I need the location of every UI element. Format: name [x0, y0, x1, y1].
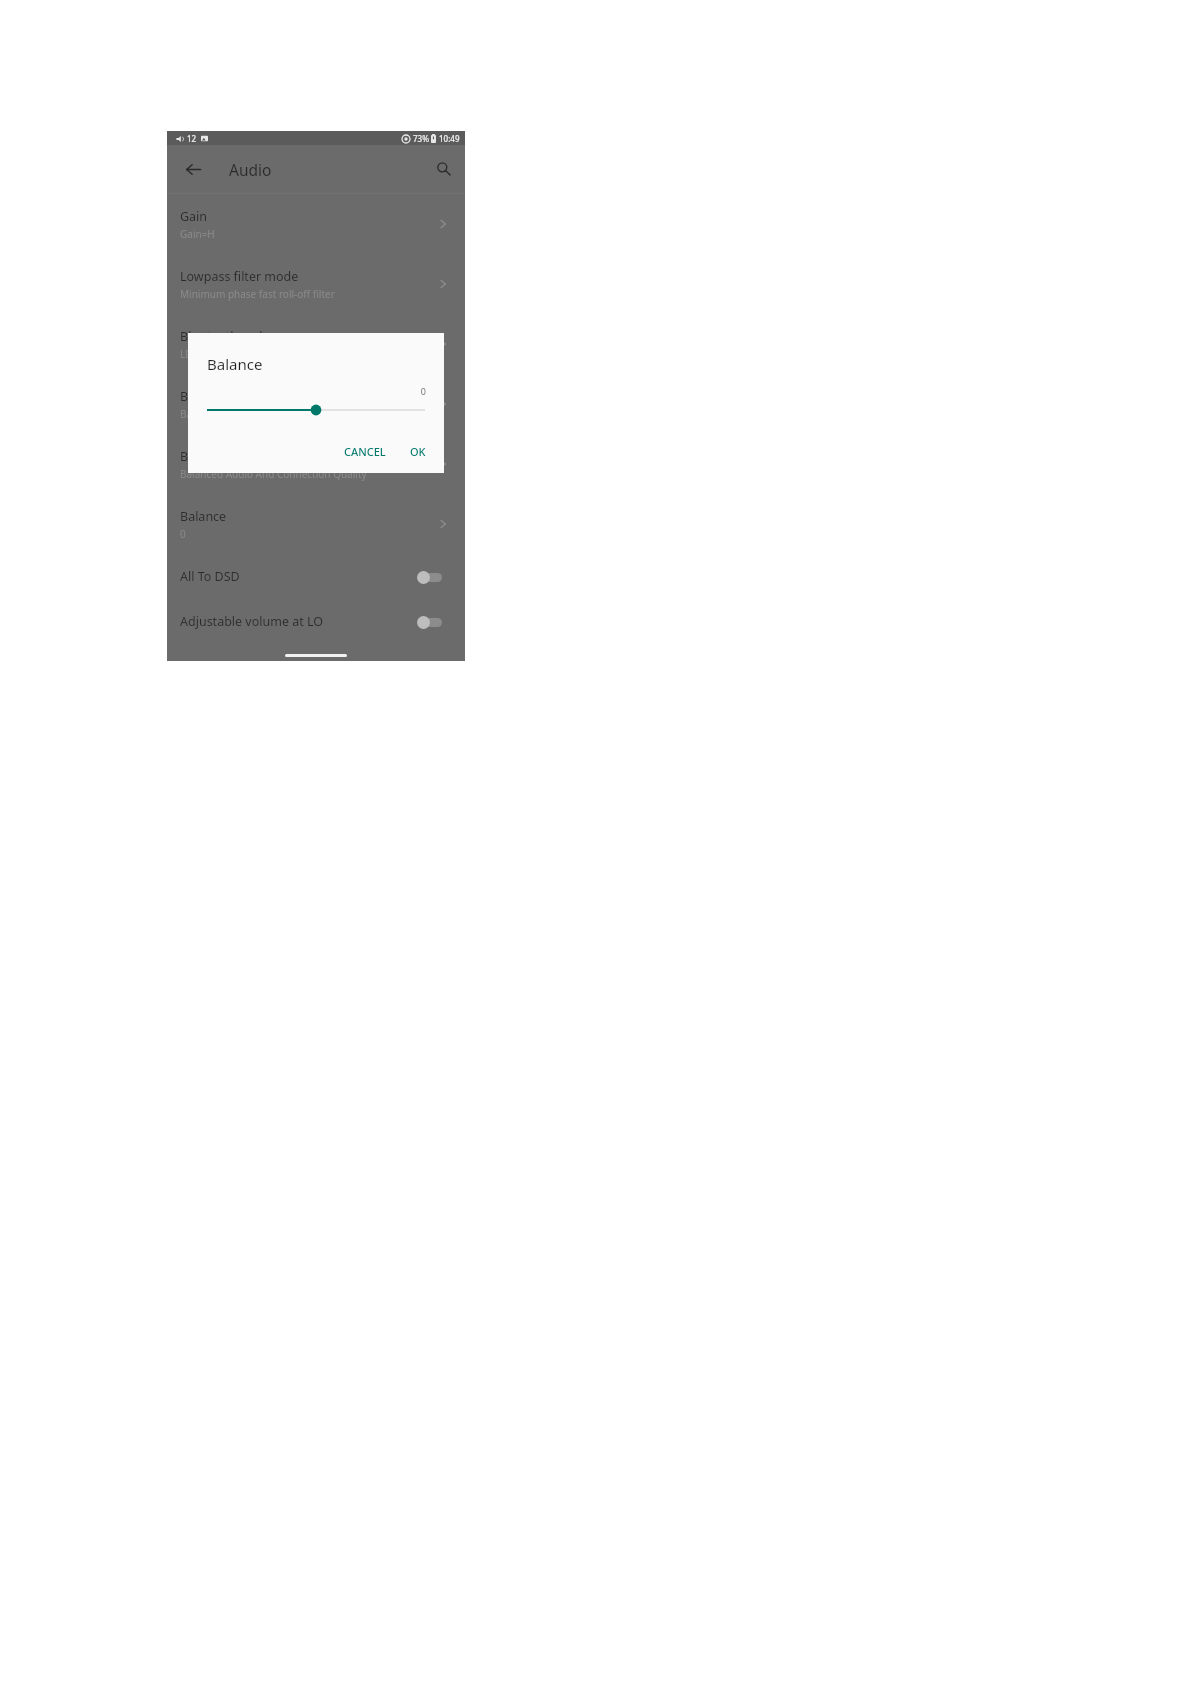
staticText: Bluetooth codec	[180, 328, 276, 345]
button[interactable]: Search	[429, 154, 457, 182]
button[interactable]: Gain	[167, 194, 465, 254]
staticText: 10:49	[439, 133, 460, 144]
staticText: Adjustable volume at LO	[180, 613, 324, 630]
staticText: Audio	[229, 159, 272, 180]
staticText: 73%	[413, 133, 429, 144]
button[interactable]: Balance slider	[188, 399, 444, 421]
staticText: Bluetooth audio quality	[180, 388, 318, 405]
button[interactable]: OK	[402, 438, 434, 465]
staticText: Gain	[180, 208, 208, 225]
button[interactable]: CANCEL	[336, 438, 394, 465]
staticText: Balance	[207, 354, 263, 374]
staticText: 0	[188, 385, 426, 397]
button[interactable]: Balance	[167, 494, 465, 554]
staticText: Minimum phase fast roll-off filter	[180, 287, 335, 301]
button[interactable]: Bluetooth audio quality	[167, 374, 465, 434]
button[interactable]: All To DSD	[167, 554, 465, 599]
staticText: 12	[187, 133, 197, 144]
staticText: Balanced Audio And Connection Quality	[180, 467, 367, 481]
staticText: Gain=H	[180, 227, 215, 241]
button[interactable]: All To DSD toggle	[417, 570, 443, 584]
button[interactable]: Bluetooth codec	[167, 314, 465, 374]
staticText: Bluetooth audio priority	[180, 448, 321, 465]
button[interactable]: Adjustable volume at LO	[167, 599, 465, 644]
staticText: Lowpass filter mode	[180, 268, 299, 285]
staticText: CANCEL	[344, 444, 386, 459]
staticText: All To DSD	[180, 568, 240, 585]
button[interactable]: Lowpass filter mode	[167, 254, 465, 314]
button[interactable]: Back	[179, 155, 207, 183]
staticText: LDAC	[180, 347, 205, 361]
staticText: Balance	[180, 508, 227, 525]
button[interactable]: Bluetooth audio priority	[167, 434, 465, 494]
staticText: 0	[180, 527, 186, 541]
staticText: OK	[410, 444, 426, 459]
button[interactable]: Adjustable volume at LO toggle	[417, 615, 443, 629]
staticText: Balanced	[180, 407, 224, 421]
